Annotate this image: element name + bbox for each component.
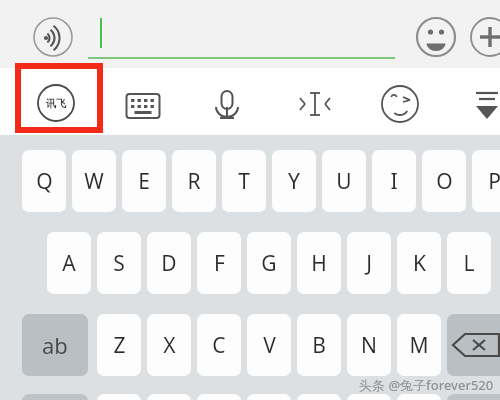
staticText: L: [463, 249, 475, 278]
staticText: B: [312, 331, 326, 360]
button[interactable]: Emoji: [416, 17, 456, 57]
staticText: 讯飞: [46, 97, 66, 110]
staticText: X: [163, 331, 176, 360]
staticText: Z: [113, 331, 126, 360]
staticText: G: [261, 249, 277, 278]
button[interactable]: X: [147, 314, 191, 376]
staticText: F: [214, 249, 225, 278]
staticText: S: [113, 249, 125, 278]
button[interactable]: V: [247, 314, 291, 376]
button[interactable]: F: [197, 232, 241, 294]
button[interactable]: Keyboard layout: [122, 85, 164, 127]
button[interactable]: Input method: [34, 81, 78, 125]
staticText: N: [361, 331, 377, 360]
staticText: K: [413, 249, 426, 278]
button[interactable]: [447, 394, 500, 400]
button[interactable]: More: [470, 17, 500, 57]
staticText: P: [488, 167, 500, 196]
button[interactable]: P: [472, 150, 500, 212]
button[interactable]: [147, 394, 191, 400]
staticText: T: [238, 167, 250, 196]
button[interactable]: T: [222, 150, 266, 212]
button[interactable]: I: [372, 150, 416, 212]
staticText: C: [212, 331, 226, 360]
button[interactable]: C: [197, 314, 241, 376]
button[interactable]: O: [422, 150, 466, 212]
button[interactable]: [197, 394, 241, 400]
staticText: H: [311, 249, 327, 278]
button[interactable]: Y: [272, 150, 316, 212]
button[interactable]: Hide keyboard: [466, 83, 500, 125]
staticText: U: [336, 167, 352, 196]
button[interactable]: D: [147, 232, 191, 294]
staticText: W: [84, 167, 104, 196]
button[interactable]: J: [347, 232, 391, 294]
staticText: Q: [36, 167, 53, 196]
staticText: 头条 @兔子forever520: [359, 376, 494, 394]
button[interactable]: [347, 394, 391, 400]
staticText: V: [263, 331, 276, 360]
button[interactable]: N: [347, 314, 391, 376]
staticText: I: [390, 167, 398, 196]
staticText: R: [187, 167, 201, 196]
button[interactable]: L: [447, 232, 491, 294]
button[interactable]: Stickers: [379, 83, 421, 125]
button[interactable]: Voice: [206, 83, 248, 125]
button[interactable]: S: [97, 232, 141, 294]
button[interactable]: M: [397, 314, 441, 376]
button[interactable]: [397, 394, 441, 400]
button[interactable]: Z: [97, 314, 141, 376]
button[interactable]: [97, 394, 141, 400]
button[interactable]: K: [397, 232, 441, 294]
button[interactable]: [247, 394, 291, 400]
staticText: M: [409, 331, 429, 360]
staticText: O: [436, 167, 453, 196]
button[interactable]: Move cursor: [294, 83, 336, 125]
button[interactable]: A: [47, 232, 91, 294]
button[interactable]: [297, 394, 341, 400]
staticText: D: [161, 249, 177, 278]
button[interactable]: W: [72, 150, 116, 212]
button[interactable]: Delete: [447, 314, 500, 376]
staticText: ab: [42, 330, 68, 360]
staticText: J: [366, 249, 372, 278]
staticText: A: [62, 249, 76, 278]
button[interactable]: R: [172, 150, 216, 212]
staticText: Y: [288, 167, 300, 196]
staticText: E: [138, 167, 150, 196]
button[interactable]: U: [322, 150, 366, 212]
button[interactable]: H: [297, 232, 341, 294]
button[interactable]: Voice input: [33, 17, 73, 57]
button[interactable]: G: [247, 232, 291, 294]
button[interactable]: E: [122, 150, 166, 212]
button[interactable]: ab: [22, 314, 88, 376]
button[interactable]: B: [297, 314, 341, 376]
button[interactable]: Q: [22, 150, 66, 212]
button[interactable]: [22, 394, 88, 400]
